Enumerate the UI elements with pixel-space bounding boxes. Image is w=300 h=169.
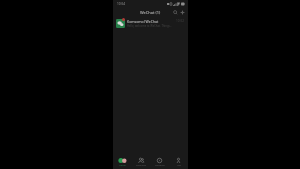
staticText: 10:54: [117, 2, 126, 6]
staticText: Contacts: [136, 163, 146, 166]
button[interactable]: Chats: [113, 153, 131, 169]
button[interactable]: Komsomol WeChat: [113, 17, 188, 30]
staticText: Hello, welcome to WeChat. Things...: [127, 24, 173, 28]
button[interactable]: Me: [169, 153, 188, 169]
button[interactable]: Add: [180, 10, 185, 15]
staticText: Discover: [155, 163, 165, 166]
staticText: Komsomol WeChat: [127, 19, 159, 24]
staticText: Chats: [119, 163, 126, 166]
button[interactable]: Discover: [150, 153, 169, 169]
button[interactable]: Contacts: [131, 153, 150, 169]
staticText: 10:52: [176, 19, 185, 23]
staticText: WeChat (1): [140, 10, 161, 15]
staticText: Me: [177, 163, 181, 166]
button[interactable]: Search: [173, 10, 178, 15]
